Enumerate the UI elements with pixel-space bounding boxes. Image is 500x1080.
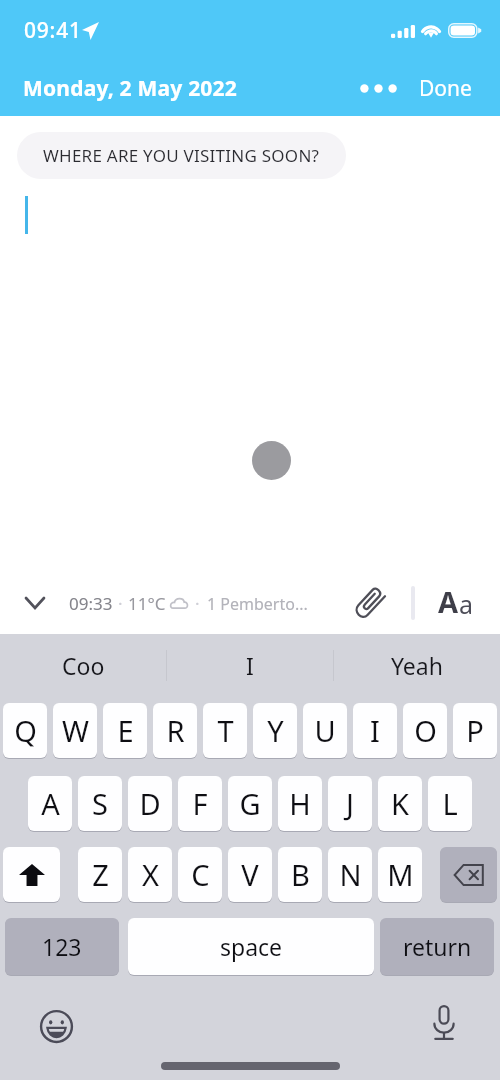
button[interactable]: I: [167, 634, 333, 696]
staticText: ·: [195, 592, 200, 615]
button[interactable]: K: [378, 776, 422, 831]
staticText: X: [142, 855, 159, 894]
staticText: W: [62, 711, 89, 750]
button[interactable]: C: [178, 847, 222, 902]
staticText: L: [442, 784, 458, 823]
staticText: R: [166, 711, 185, 750]
button[interactable]: WHERE ARE YOU VISITING SOON?: [17, 132, 346, 179]
staticText: 1 Pemberto...: [207, 593, 308, 615]
button[interactable]: R: [153, 703, 197, 758]
staticText: S: [92, 784, 108, 823]
staticText: U: [314, 711, 336, 750]
staticText: T: [217, 711, 234, 750]
staticText: H: [289, 784, 311, 823]
staticText: ·: [118, 592, 123, 615]
staticText: a: [459, 587, 474, 621]
staticText: N: [339, 855, 362, 894]
button[interactable]: E: [103, 703, 147, 758]
button[interactable]: Q: [3, 703, 47, 758]
button[interactable]: Z: [78, 847, 122, 902]
staticText: O: [414, 711, 437, 750]
button[interactable]: S: [78, 776, 122, 831]
staticText: C: [191, 855, 210, 894]
button[interactable]: G: [228, 776, 272, 831]
staticText: Monday, 2 May 2022: [23, 74, 237, 103]
button[interactable]: H: [278, 776, 322, 831]
button[interactable]: Done: [409, 70, 482, 106]
button[interactable]: Backspace: [440, 847, 497, 902]
button[interactable]: V: [228, 847, 272, 902]
button[interactable]: Coo: [0, 634, 166, 696]
staticText: 09:41: [24, 16, 82, 45]
staticText: J: [346, 784, 354, 823]
button[interactable]: P: [453, 703, 497, 758]
staticText: 11°C: [128, 592, 166, 615]
button[interactable]: space: [128, 918, 374, 975]
button[interactable]: M: [378, 847, 422, 902]
staticText: M: [387, 855, 414, 894]
button[interactable]: Dictation: [426, 1005, 462, 1041]
button[interactable]: W: [53, 703, 97, 758]
staticText: Z: [92, 855, 109, 894]
staticText: F: [192, 784, 208, 823]
button[interactable]: 123: [5, 918, 119, 975]
staticText: G: [239, 784, 261, 823]
staticText: K: [391, 784, 409, 823]
button[interactable]: I: [353, 703, 397, 758]
button[interactable]: U: [303, 703, 347, 758]
button[interactable]: Attach file: [351, 584, 388, 621]
staticText: Yeah: [391, 650, 443, 681]
button[interactable]: L: [428, 776, 472, 831]
staticText: Done: [419, 74, 472, 103]
staticText: A: [438, 582, 459, 621]
button[interactable]: More options: [354, 71, 402, 105]
button[interactable]: O: [403, 703, 447, 758]
staticText: Y: [267, 711, 284, 750]
staticText: A: [41, 784, 60, 823]
button[interactable]: Yeah: [334, 634, 500, 696]
button[interactable]: Collapse: [18, 586, 51, 619]
button[interactable]: Emoji keyboard: [38, 1008, 74, 1044]
button[interactable]: return: [380, 918, 494, 975]
button[interactable]: J: [328, 776, 372, 831]
staticText: WHERE ARE YOU VISITING SOON?: [43, 144, 320, 167]
button[interactable]: B: [278, 847, 322, 902]
button[interactable]: Format text: [433, 580, 479, 622]
button[interactable]: T: [203, 703, 247, 758]
staticText: V: [241, 855, 259, 894]
button[interactable]: Y: [253, 703, 297, 758]
staticText: return: [403, 931, 472, 962]
button[interactable]: Shift: [3, 847, 60, 902]
staticText: Q: [14, 711, 37, 750]
staticText: B: [291, 855, 310, 894]
staticText: E: [117, 711, 134, 750]
staticText: 123: [42, 931, 82, 962]
button[interactable]: F: [178, 776, 222, 831]
staticText: P: [466, 711, 484, 750]
staticText: I: [370, 711, 380, 750]
staticText: space: [220, 931, 283, 962]
staticText: Coo: [62, 650, 105, 681]
button[interactable]: X: [128, 847, 172, 902]
staticText: I: [246, 650, 254, 681]
button[interactable]: N: [328, 847, 372, 902]
staticText: 09:33: [69, 592, 113, 615]
button[interactable]: D: [128, 776, 172, 831]
button[interactable]: A: [28, 776, 72, 831]
staticText: D: [139, 784, 161, 823]
